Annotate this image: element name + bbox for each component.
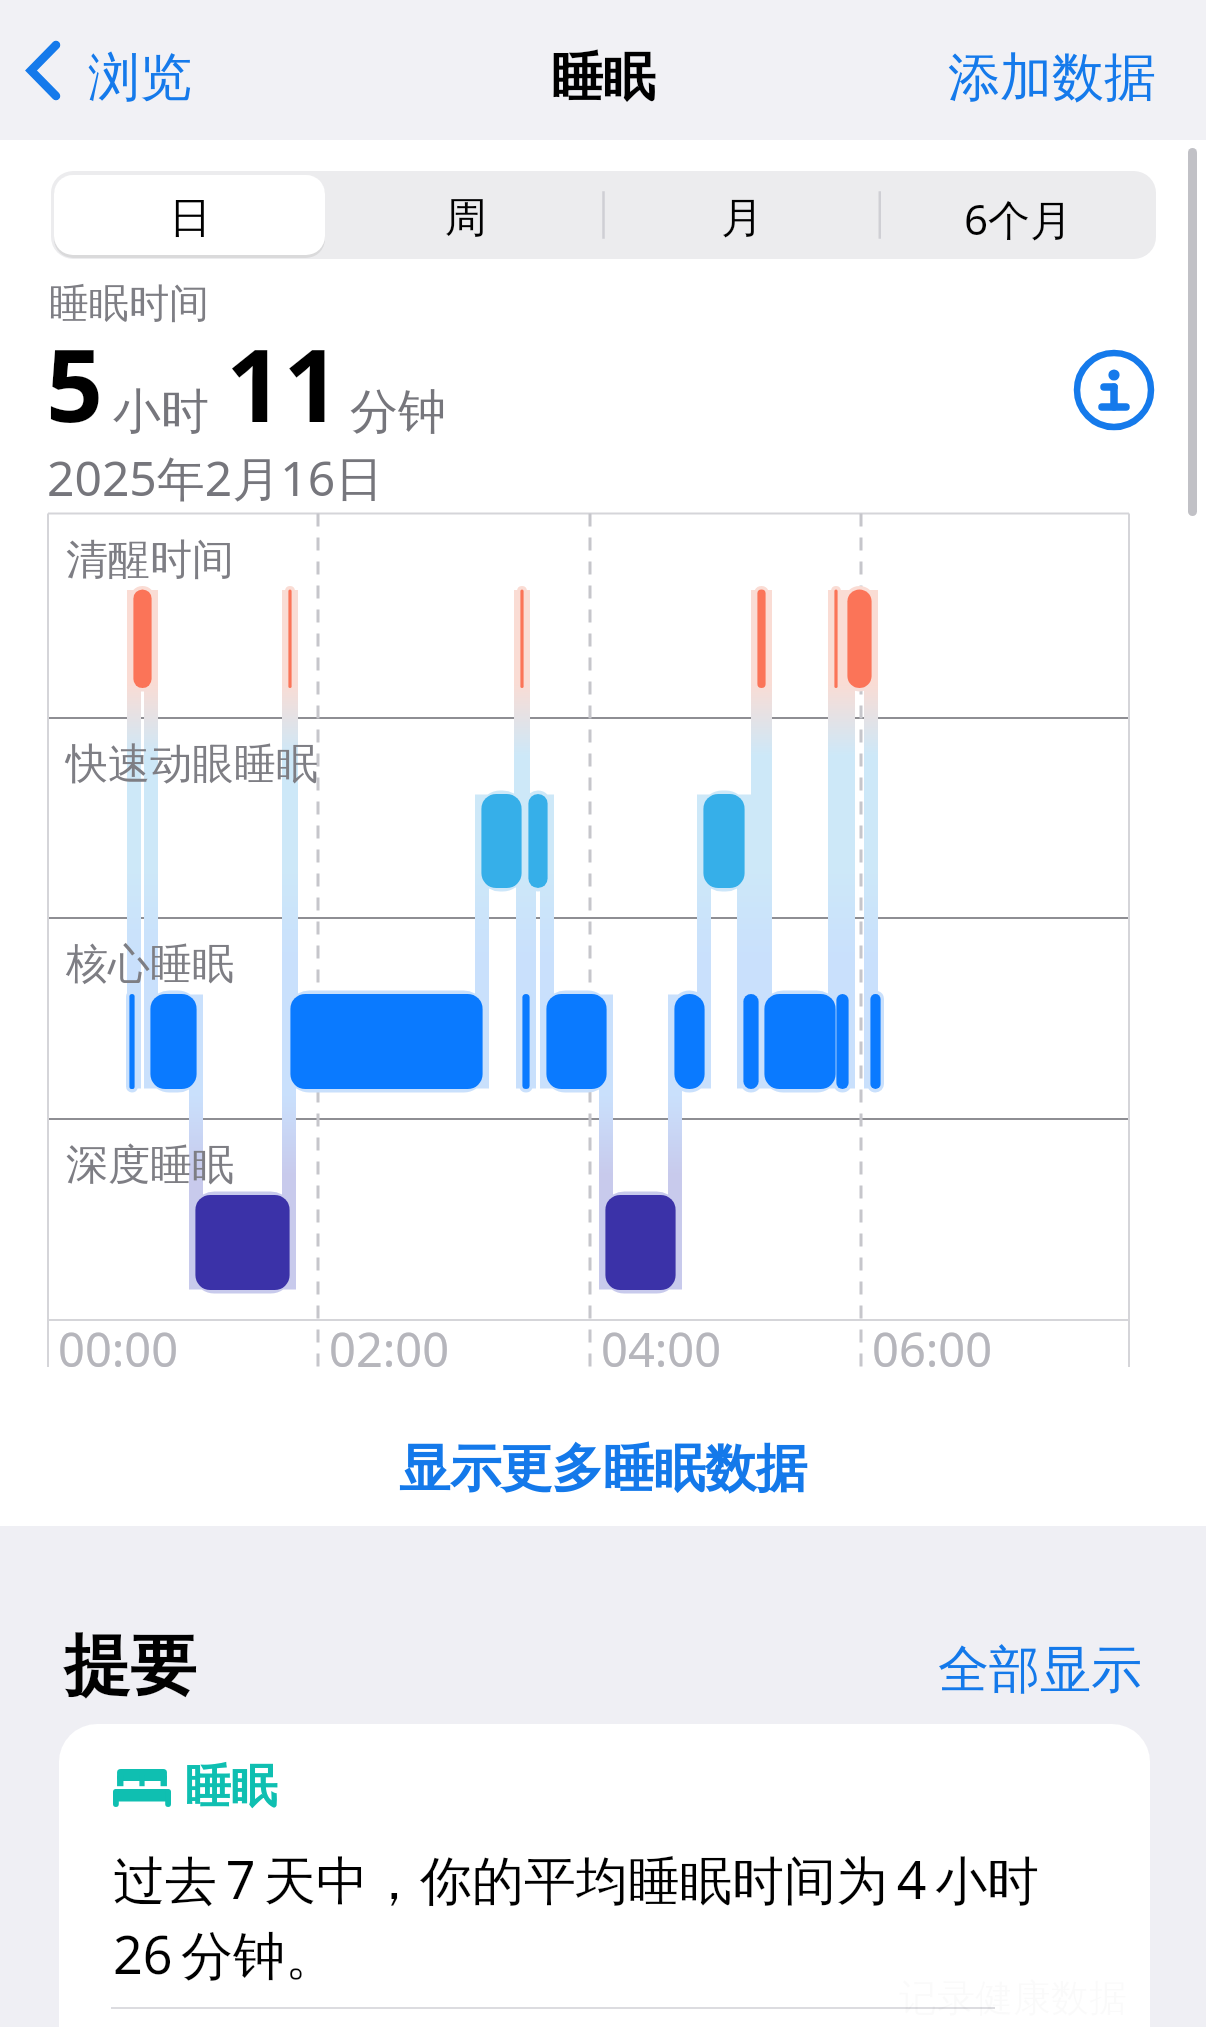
staticText: 过去 7 天中，你的平均睡眠时间为 4 小时 26 分钟。 [113, 1843, 1040, 1989]
staticText: 添加数据 [948, 45, 1156, 111]
staticText: 睡眠 [185, 1758, 277, 1816]
staticText: 记录健康数据 [899, 1974, 1127, 2022]
staticText: 11 [226, 315, 341, 451]
staticText: 显示更多睡眠数据 [399, 1437, 807, 1501]
button[interactable]: 日 [51, 171, 328, 259]
button[interactable]: 显示更多睡眠数据 [0, 1405, 1206, 1526]
button[interactable]: 信息 [1073, 349, 1155, 431]
button[interactable]: 浏览 [0, 37, 206, 103]
button[interactable]: 月 [604, 171, 880, 259]
staticText: 02:00 [329, 1317, 450, 1381]
button[interactable]: 睡眠 [59, 1724, 1150, 2027]
staticText: 快速动眼睡眠 [66, 738, 318, 791]
staticText: 2025年2月16日 [47, 445, 384, 511]
button[interactable]: 周 [328, 171, 604, 259]
staticText: 清醒时间 [66, 534, 234, 587]
staticText: 全部显示 [938, 1638, 1142, 1702]
staticText: 周 [445, 192, 487, 245]
staticText: 06:00 [872, 1317, 993, 1381]
button[interactable]: 添加数据 [922, 23, 1206, 117]
staticText: 浏览 [88, 45, 192, 111]
button[interactable]: 提要 [64, 1624, 196, 1707]
staticText: 分钟 [350, 382, 446, 442]
staticText: 核心睡眠 [66, 938, 234, 991]
staticText: 月 [721, 192, 763, 245]
staticText: 日 [169, 192, 211, 245]
staticText: 睡眠 [551, 45, 655, 111]
staticText: 00:00 [58, 1317, 179, 1381]
staticText: 小时 [113, 382, 209, 442]
staticText: 6个月 [964, 190, 1073, 247]
button[interactable]: 6个月 [880, 171, 1156, 259]
staticText: 深度睡眠 [66, 1139, 234, 1192]
staticText: 睡眠时间 [49, 278, 209, 328]
staticText: 5 [46, 315, 104, 451]
button[interactable]: 全部显示 [938, 1638, 1142, 1702]
staticText: 04:00 [601, 1317, 722, 1381]
